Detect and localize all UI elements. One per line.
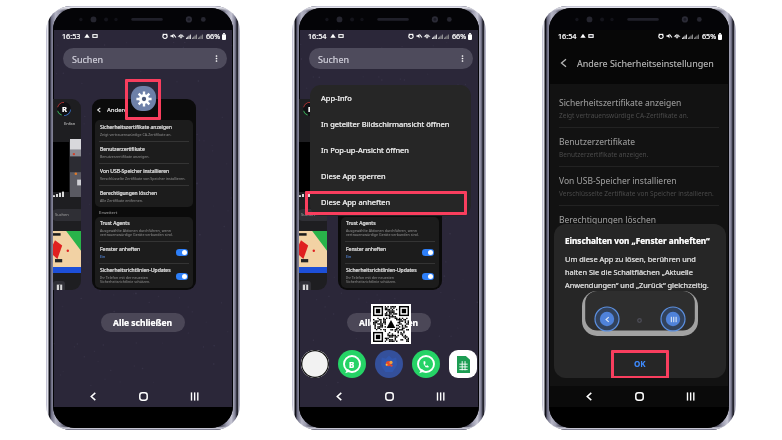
button[interactable]: Andere Sicherheitseinstellungen: [92, 99, 196, 290]
button[interactable]: Back: [327, 386, 351, 407]
button[interactable]: Fenster anheften: [346, 242, 434, 263]
staticText: R: [62, 104, 67, 114]
button[interactable]: Von USB-Speicher installieren: [559, 167, 719, 205]
staticText: Suchen: [301, 212, 315, 217]
button[interactable]: More options: [457, 53, 468, 64]
button[interactable]: Diese App anheften: [321, 189, 471, 215]
staticText: Berechtigungen löschen: [346, 190, 404, 197]
button[interactable]: Back: [557, 56, 571, 70]
staticText: Um diese App zu lösen, berühren und halt…: [565, 254, 717, 290]
staticText: Alle Zertifikate entfernen.: [346, 198, 389, 203]
staticText: App-Info: [321, 93, 352, 103]
button[interactable]: Diese App sperren: [321, 163, 471, 189]
staticText: B: [349, 359, 355, 370]
button[interactable]: Berechtigungen löschen: [346, 186, 434, 207]
staticText: Sicherheitszertifikate anzeigen: [100, 124, 172, 131]
staticText: Benutzerzertifikate: [100, 146, 145, 153]
staticText: Verschlüsselte Zertifikate von Speicher …: [559, 189, 714, 198]
button[interactable]: Back: [81, 386, 105, 407]
staticText: Sicherheitszertifikate anzeigen: [559, 97, 682, 109]
staticText: Alle schließen: [113, 317, 173, 329]
staticText: Verschlüsselte Zertifikate von Speicher …: [346, 176, 432, 181]
button[interactable]: In Pop-up-Ansicht öffnen: [321, 137, 471, 163]
staticText: Trust Agents: [346, 220, 376, 227]
button[interactable]: Suchen: [63, 48, 227, 69]
staticText: Suchen: [318, 53, 350, 65]
staticText: Fenster anheften: [100, 246, 141, 253]
button[interactable]: Alle schließen: [101, 313, 185, 332]
staticText: In Pop-up-Ansicht öffnen: [321, 145, 409, 155]
button[interactable]: Firefox: [375, 350, 403, 378]
staticText: Berechtigungen löschen: [100, 190, 158, 197]
staticText: Benutzerzertifikate anzeigen.: [100, 154, 150, 159]
staticText: Benutzerzertifikate: [346, 146, 391, 153]
button[interactable]: Benutzerzertifikate: [559, 128, 719, 166]
staticText: Alle Zertifikate entfernen.: [100, 198, 143, 203]
staticText: 16:53: [62, 31, 81, 41]
staticText: Suchen: [55, 212, 69, 217]
button[interactable]: In geteilter Bildschirmansicht öffnen: [321, 111, 471, 137]
button[interactable]: Recent apps: [182, 386, 206, 407]
button[interactable]: App-Info: [321, 85, 471, 111]
button[interactable]: Trust Agents: [346, 217, 434, 241]
button[interactable]: Sicherheitsrichtlinien-Updates: [100, 264, 188, 288]
button[interactable]: OK: [611, 349, 669, 377]
button[interactable]: WhatsApp: [412, 350, 440, 378]
button[interactable]: Benutzerzertifikate: [346, 142, 434, 163]
staticText: Suchen: [72, 53, 104, 65]
button[interactable]: [176, 249, 188, 256]
staticText: Benutzerzertifikate: [559, 136, 636, 148]
button[interactable]: [422, 249, 434, 256]
staticText: Trust Agents: [100, 220, 130, 227]
button[interactable]: Spreadsheet: [449, 350, 477, 378]
button[interactable]: Home: [377, 386, 401, 407]
staticText: Benutzerzertifikate anzeigen.: [559, 150, 649, 159]
button[interactable]: Sicherheitsrichtlinien-Updates: [346, 264, 434, 288]
button[interactable]: Sicherheitszertifikate anzeigen: [559, 89, 719, 127]
staticText: 66%: [206, 31, 221, 41]
button[interactable]: Sicherheitszertifikate anzeigen: [338, 99, 442, 290]
button[interactable]: Von USB-Speicher installieren: [100, 164, 188, 185]
button[interactable]: Benutzerzertifikate: [100, 142, 188, 163]
button[interactable]: Sicherheitszertifikate anzeigen: [100, 120, 188, 141]
button[interactable]: Suchen: [309, 48, 473, 69]
button[interactable]: Sicherheitszertifikate anzeigen: [346, 120, 434, 141]
button[interactable]: Phone: [301, 350, 329, 378]
button[interactable]: Berechtigungen löschen: [559, 206, 719, 244]
staticText: Diese App anheften: [321, 197, 391, 207]
button[interactable]: [422, 273, 434, 280]
staticText: Berechtigungen löschen: [559, 214, 657, 226]
button[interactable]: Recent apps: [678, 386, 702, 407]
button[interactable]: Trust Agents: [100, 217, 188, 241]
staticText: Von USB-Speicher installieren: [100, 168, 170, 175]
staticText: Alle schließen: [359, 317, 419, 329]
staticText: Enfan: [64, 121, 76, 127]
staticText: 65%: [702, 31, 717, 41]
staticText: 16:54: [308, 31, 327, 41]
staticText: Sicherheitsrichtlinien-Updates: [346, 267, 417, 274]
button[interactable]: Recent apps: [428, 386, 452, 407]
button[interactable]: Home: [131, 386, 155, 407]
staticText: Ein: [100, 254, 106, 259]
staticText: Verschlüsselte Zertifikate von Speicher …: [100, 176, 186, 181]
button[interactable]: More options: [211, 53, 222, 64]
staticText: Sicherheitszertifikate anzeigen: [346, 124, 418, 131]
staticText: Ein: [346, 254, 352, 259]
button[interactable]: Back: [577, 386, 601, 407]
button[interactable]: WhatsApp Business: [338, 350, 366, 378]
staticText: Von USB-Speicher installieren: [559, 175, 677, 187]
staticText: Diese App sperren: [321, 171, 386, 181]
button[interactable]: Von USB-Speicher installieren: [346, 164, 434, 185]
staticText: Zeigt vertrauenswürdige CA-Zertifikate a…: [559, 111, 689, 120]
staticText: Zeigt vertrauenswürdige CA-Zertifikate a…: [100, 132, 172, 137]
staticText: Ausgewählte Aktionen durchführen, wenn v…: [346, 228, 434, 238]
button[interactable]: [176, 273, 188, 280]
button[interactable]: Berechtigungen löschen: [100, 186, 188, 207]
button[interactable]: Home: [627, 386, 651, 407]
staticText: Andere Sicherheitseinstellungen: [577, 57, 714, 69]
button[interactable]: Fenster anheften: [100, 242, 188, 263]
staticText: Einschalten von „Fenster anheften“: [565, 235, 710, 246]
